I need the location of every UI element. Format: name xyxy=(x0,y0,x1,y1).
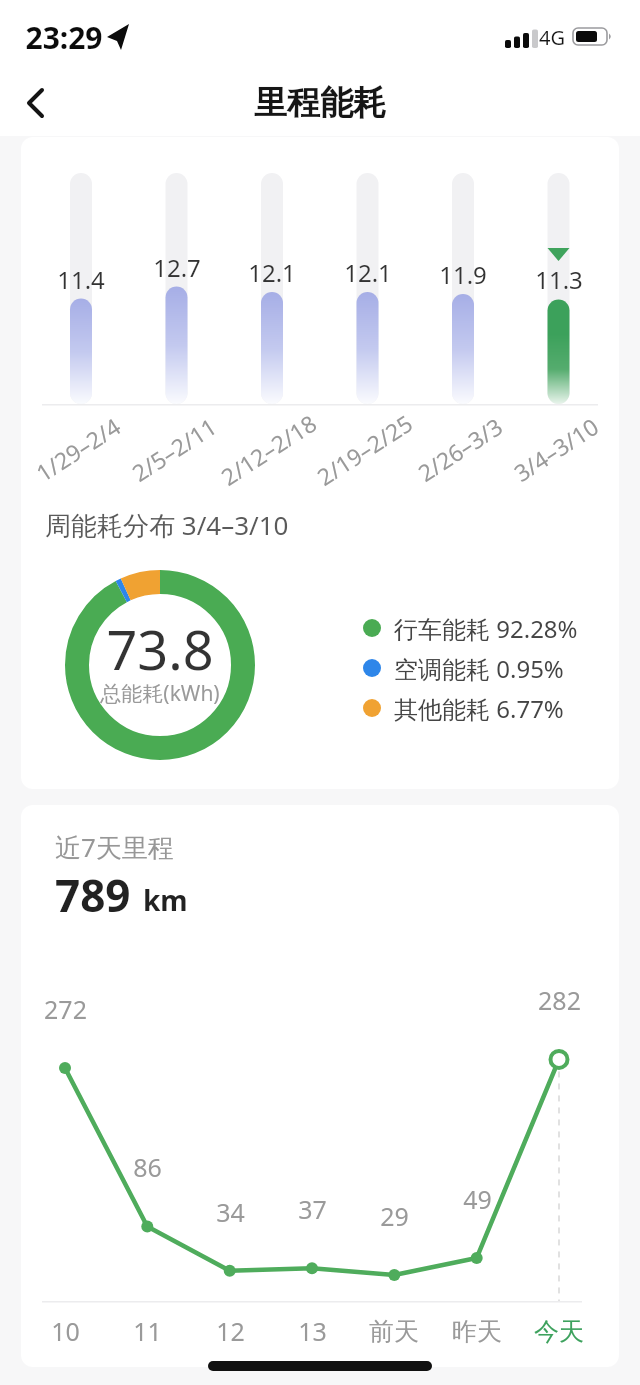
staticText: 34 xyxy=(216,1195,245,1229)
staticText: 282 xyxy=(538,983,581,1017)
staticText: 272 xyxy=(44,992,87,1026)
staticText: 12.1 xyxy=(248,256,296,289)
staticText: 4G xyxy=(539,24,565,51)
staticText: 近7天里程 xyxy=(55,829,174,865)
staticText: 空调能耗 0.95% xyxy=(394,652,564,685)
staticText: 10 xyxy=(51,1314,80,1348)
staticText: 今天 xyxy=(534,1316,584,1347)
staticText: 1/29–2/4 xyxy=(29,410,126,488)
staticText: 12 xyxy=(216,1314,245,1348)
staticText: 12.7 xyxy=(153,251,201,284)
staticText: 73.8 xyxy=(106,612,214,686)
staticText: 其他能耗 6.77% xyxy=(394,692,564,725)
staticText: 11.9 xyxy=(439,258,487,291)
staticText: 789 xyxy=(55,865,131,925)
staticText: 13 xyxy=(298,1314,327,1348)
staticText: 49 xyxy=(463,1182,492,1216)
staticText: 11.4 xyxy=(57,263,105,296)
staticText: 11 xyxy=(133,1314,162,1348)
staticText: 行车能耗 92.28% xyxy=(394,612,578,645)
staticText: 2/12–2/18 xyxy=(214,407,322,492)
staticText: 2/5–2/11 xyxy=(125,410,222,488)
staticText: 总能耗(kWh) xyxy=(100,679,220,708)
staticText: 里程能耗 xyxy=(254,82,386,124)
staticText: 23:29 xyxy=(25,17,103,57)
staticText: 前天 xyxy=(369,1316,419,1347)
staticText: 37 xyxy=(298,1192,327,1226)
button[interactable] xyxy=(10,80,66,126)
staticText: km xyxy=(143,881,188,919)
staticText: 11.3 xyxy=(535,263,583,296)
staticText: 2/26–3/3 xyxy=(411,410,508,488)
staticText: 周能耗分布 3/4–3/10 xyxy=(45,507,289,543)
staticText: 2/19–2/25 xyxy=(310,407,418,492)
staticText: 昨天 xyxy=(452,1316,502,1347)
staticText: 86 xyxy=(133,1150,162,1184)
staticText: 3/4–3/10 xyxy=(507,410,604,488)
staticText: 29 xyxy=(380,1199,409,1233)
staticText: 12.1 xyxy=(344,256,392,289)
